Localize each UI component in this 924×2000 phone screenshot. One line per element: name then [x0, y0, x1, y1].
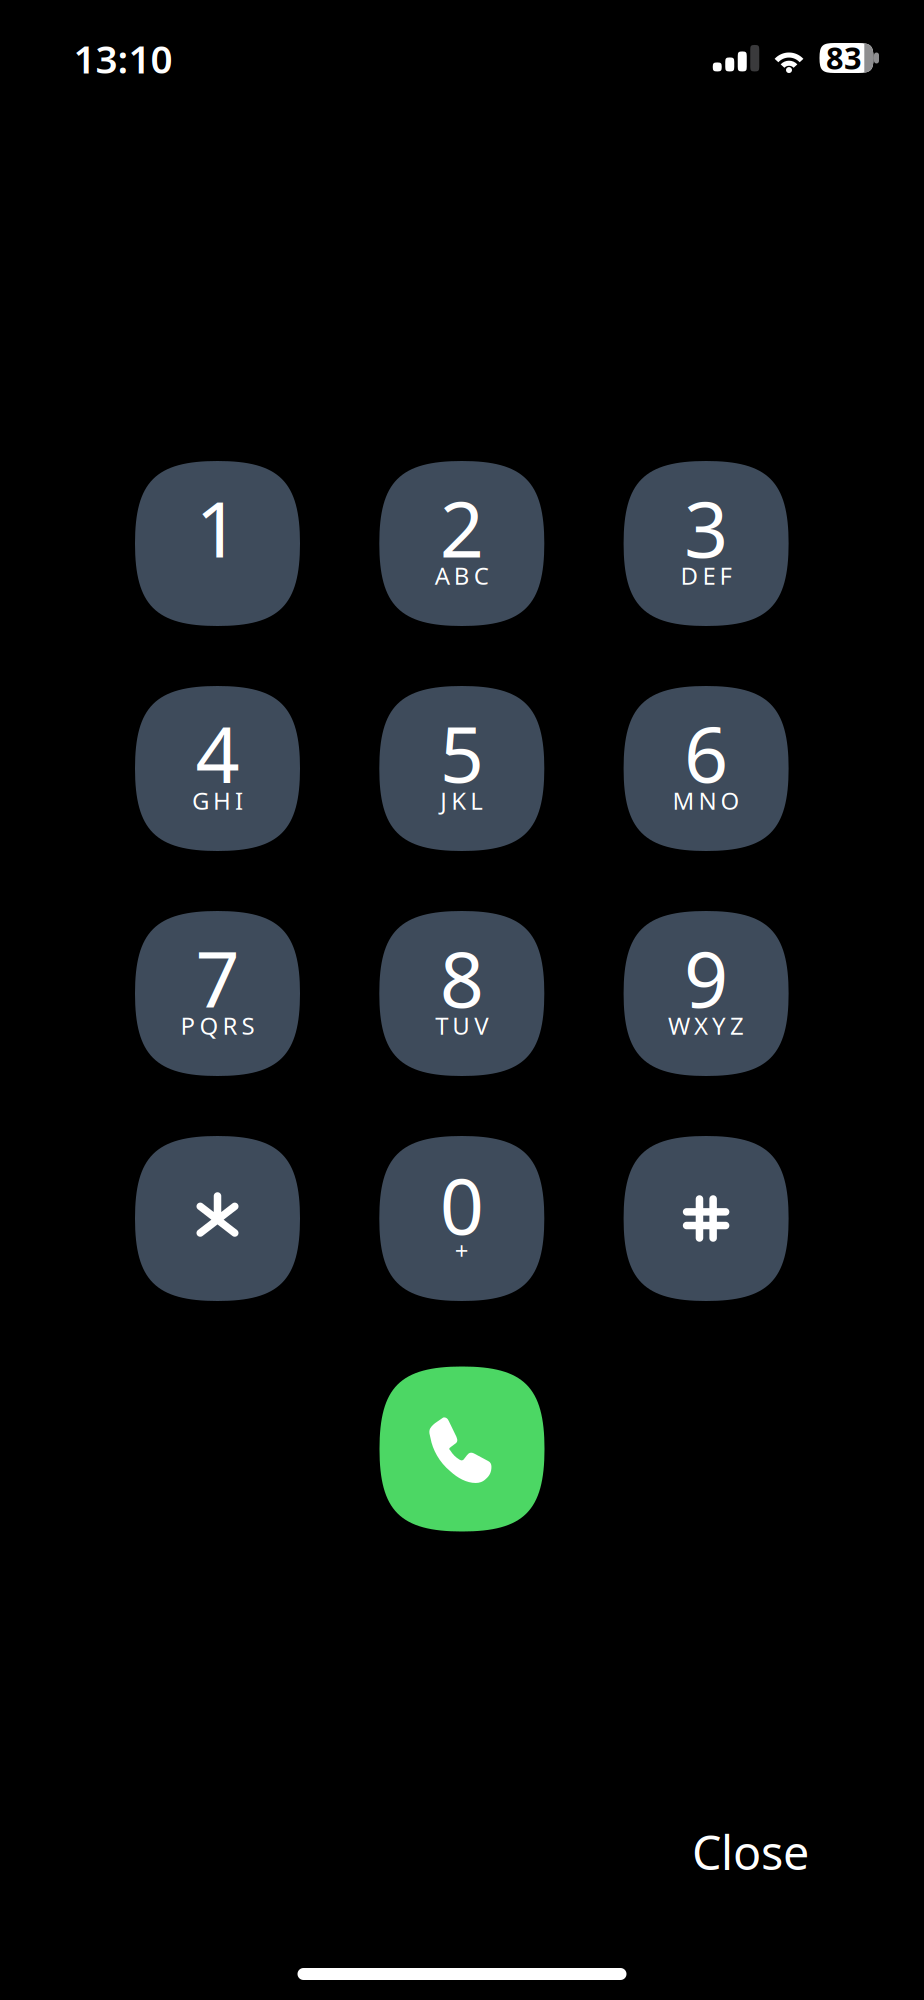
staticText: A B C: [435, 560, 489, 591]
staticText: W X Y Z: [668, 1010, 744, 1041]
staticText: 9: [684, 926, 728, 1029]
staticText: 5: [440, 701, 484, 804]
button[interactable]: 0: [379, 1136, 544, 1301]
staticText: 6: [684, 701, 728, 804]
button[interactable]: Pound: [624, 1136, 789, 1301]
staticText: M N O: [673, 785, 740, 816]
staticText: 0: [440, 1153, 484, 1256]
staticText: T U V: [435, 1010, 488, 1041]
staticText: 8: [440, 926, 484, 1029]
staticText: P Q R S: [180, 1010, 254, 1041]
button[interactable]: Close: [675, 1817, 825, 1887]
staticText: 4: [195, 701, 239, 804]
staticText: 7: [195, 926, 239, 1029]
staticText: 1: [195, 476, 239, 579]
button[interactable]: 7: [135, 911, 300, 1076]
button[interactable]: 1: [135, 461, 300, 626]
button[interactable]: 3: [624, 461, 789, 626]
staticText: 83: [826, 37, 862, 78]
staticText: G H I: [192, 785, 243, 816]
button[interactable]: Call: [379, 1366, 544, 1531]
button[interactable]: 5: [379, 686, 544, 851]
button[interactable]: 9: [624, 911, 789, 1076]
staticText: 3: [684, 476, 728, 579]
staticText: 13:10: [73, 33, 172, 84]
staticText: Close: [692, 1821, 809, 1883]
button[interactable]: 2: [379, 461, 544, 626]
staticText: 2: [440, 476, 484, 579]
staticText: J K L: [440, 785, 483, 816]
staticText: +: [455, 1235, 469, 1266]
button[interactable]: 8: [379, 911, 544, 1076]
staticText: D E F: [681, 560, 732, 591]
button[interactable]: 4: [135, 686, 300, 851]
button[interactable]: 6: [624, 686, 789, 851]
button[interactable]: Star: [135, 1136, 300, 1301]
